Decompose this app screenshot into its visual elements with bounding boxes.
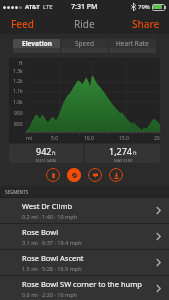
staticText: ft — [52, 150, 56, 157]
staticText: ft — [133, 150, 137, 157]
staticText: AT&T — [25, 3, 40, 11]
button[interactable]: Download — [109, 168, 123, 182]
staticText: 1.0k — [13, 99, 23, 106]
staticText: 0.6 mi · 2:20 · 16 mph — [22, 291, 77, 298]
staticText: 15.0 — [119, 135, 129, 142]
button[interactable]: West Dr Climb — [0, 198, 169, 223]
button[interactable]: Heart Rate — [109, 39, 156, 48]
staticText: 942 — [36, 145, 52, 157]
staticText: 1.3k — [13, 68, 23, 75]
button[interactable]: Rose Bowl — [0, 224, 169, 249]
button[interactable]: Rose Bowl Ascent — [0, 250, 169, 275]
staticText: ELEV GAIN — [36, 158, 56, 163]
staticText: 1.5 mi · 5:28 · 16.9 mph — [22, 265, 82, 272]
button[interactable]: Comments — [88, 168, 102, 182]
staticText: ft — [19, 60, 23, 67]
button[interactable]: Elevation — [13, 39, 60, 48]
staticText: 1.2k — [13, 78, 23, 85]
staticText: Speed — [75, 39, 94, 48]
staticText: 3.1 mi · 9:37 · 19.4 mph — [22, 239, 82, 246]
staticText: SEGMENTS — [5, 189, 29, 195]
staticText: Heart Rate — [116, 39, 149, 48]
button[interactable]: Speed — [61, 39, 108, 48]
button[interactable]: Achievements — [67, 168, 81, 182]
staticText: mi — [26, 135, 32, 142]
button[interactable]: Feed — [0, 13, 45, 34]
staticText: 79% — [138, 3, 150, 11]
button[interactable]: Kudos — [46, 168, 60, 182]
staticText: 10.0 — [84, 135, 94, 142]
button[interactable]: Rose Bowl SW corner to the hump — [0, 276, 169, 300]
staticText: 7:31 PM — [71, 2, 98, 12]
staticText: 1.1k — [13, 88, 23, 95]
staticText: 20 — [154, 135, 160, 142]
button[interactable]: Share — [123, 13, 169, 34]
staticText: 900 — [14, 110, 23, 117]
staticText: Elevation — [22, 39, 52, 48]
button[interactable]: 1,274 — [85, 144, 160, 163]
staticText: Rose Bowl — [22, 227, 59, 237]
button[interactable]: 942 — [9, 144, 83, 163]
staticText: 800 — [14, 121, 23, 128]
staticText: West Dr Climb — [22, 201, 73, 211]
staticText: LTE — [43, 3, 53, 11]
staticText: 0.2 mi · 1:40 · 10 mph — [22, 213, 77, 220]
staticText: Share — [132, 17, 160, 30]
staticText: Rose Bowl Ascent — [22, 253, 84, 263]
staticText: Feed — [11, 17, 34, 30]
staticText: 1,274 — [109, 145, 133, 157]
staticText: Rose Bowl SW corner to the hump — [22, 279, 142, 289]
staticText: Ride — [74, 17, 95, 31]
staticText: 5.0 — [51, 135, 59, 142]
staticText: MAX ELEV — [114, 158, 133, 163]
